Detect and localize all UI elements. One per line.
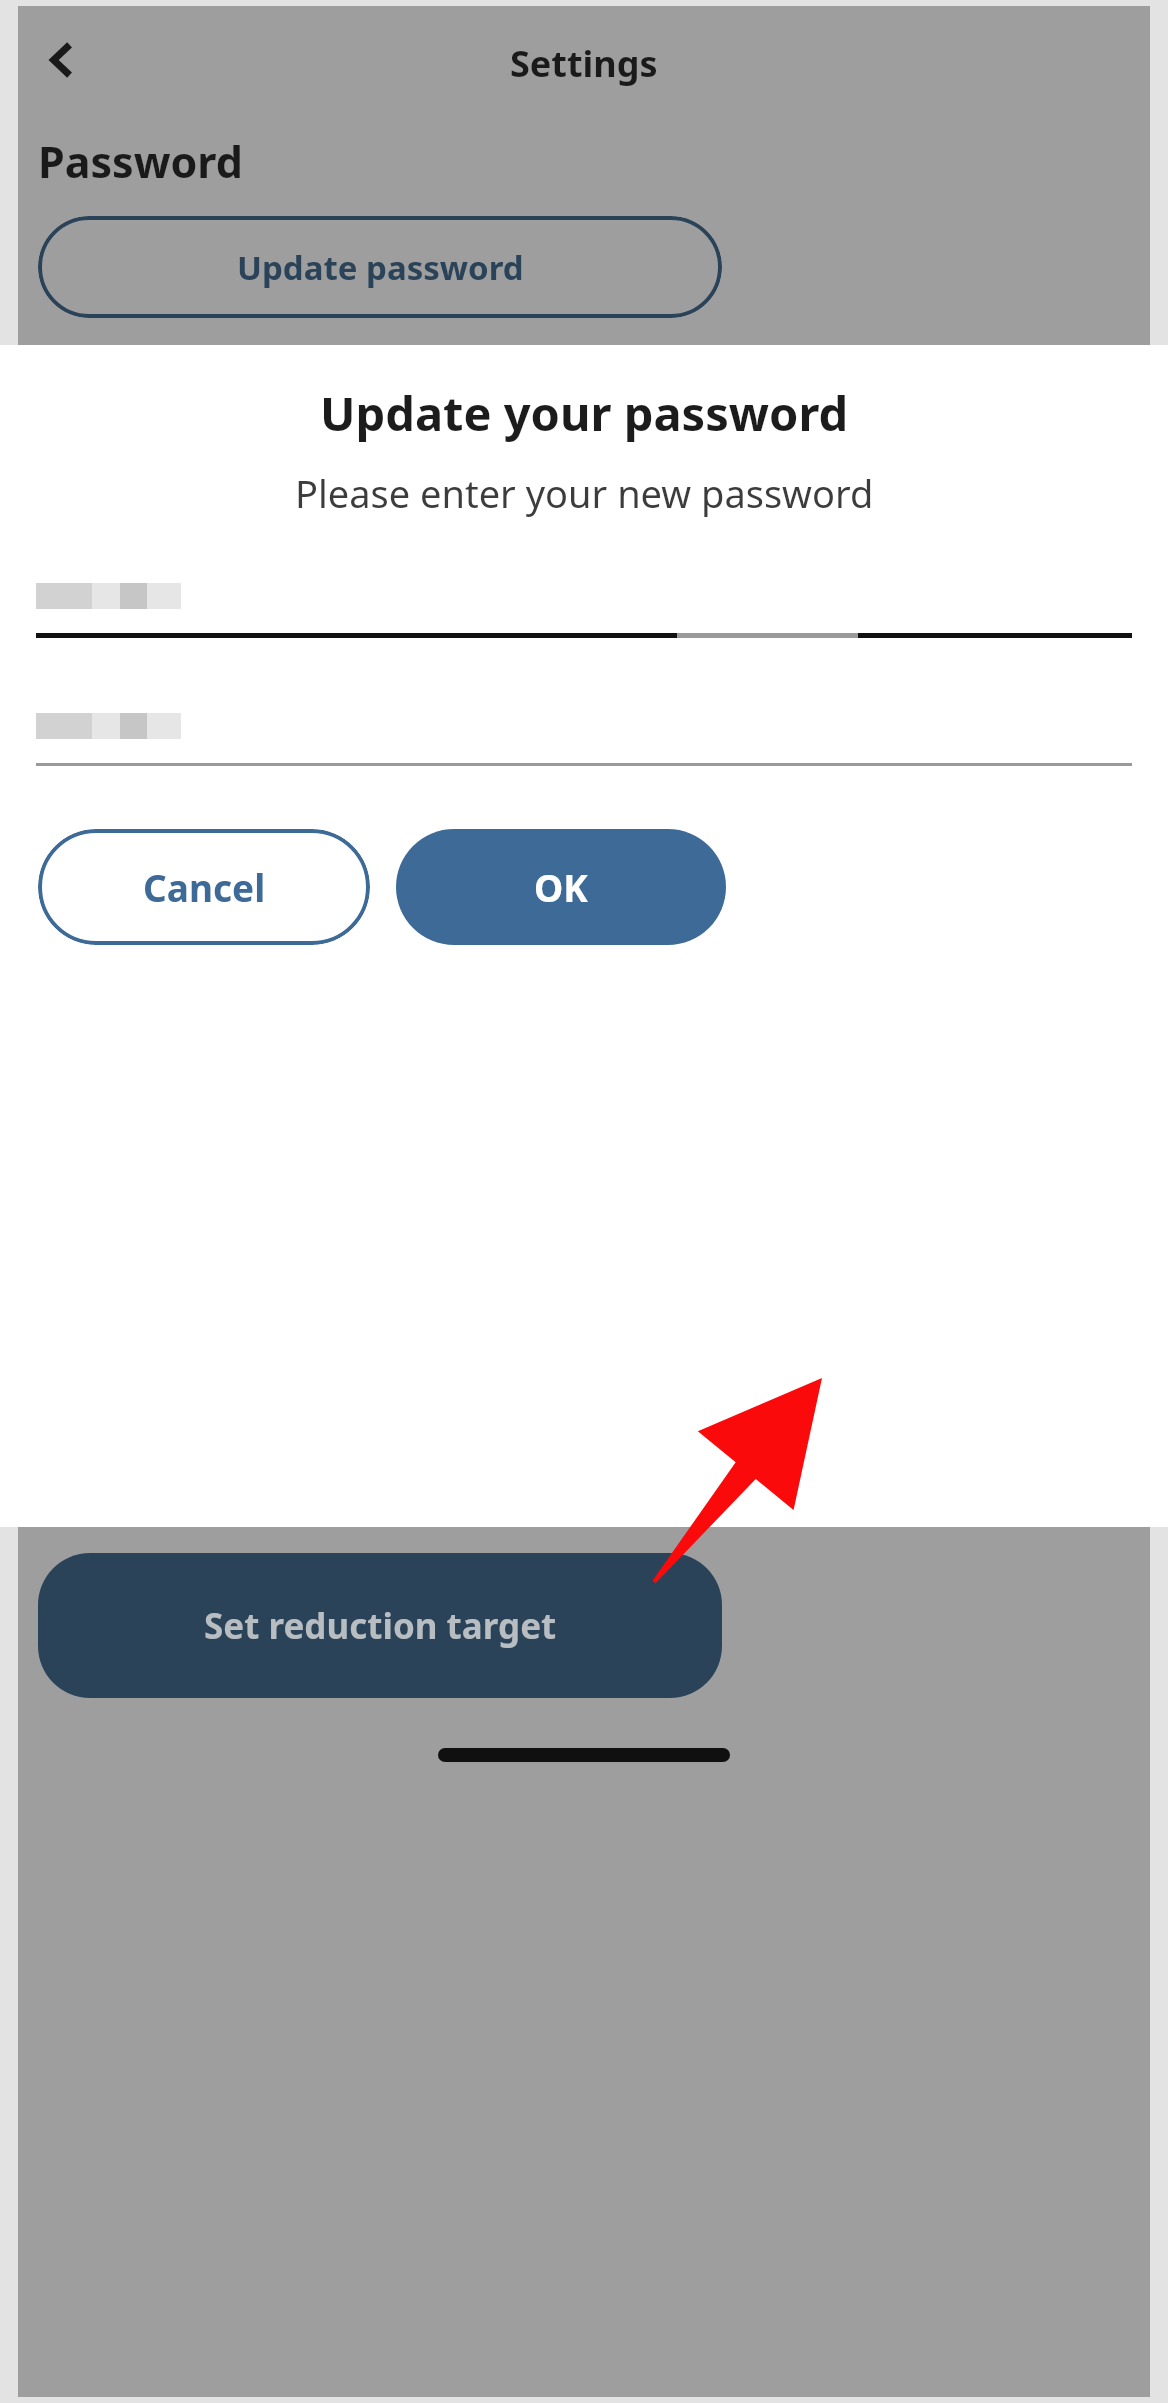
staticText: Password [38,132,243,191]
staticText: Please enter your new password [295,467,874,519]
staticText: Update your password [320,381,849,445]
staticText: Set reduction target [204,1602,557,1650]
button[interactable]: OK [396,829,726,945]
button[interactable] [36,633,1132,638]
staticText: OK [534,862,588,912]
staticText: Cancel [143,862,266,912]
button[interactable]: Update password [38,216,722,318]
staticText: Settings [510,39,658,88]
button[interactable]: Back [24,22,100,98]
button[interactable]: Cancel [38,829,370,945]
button[interactable]: Set reduction target [38,1553,722,1698]
staticText: Update password [237,245,524,290]
